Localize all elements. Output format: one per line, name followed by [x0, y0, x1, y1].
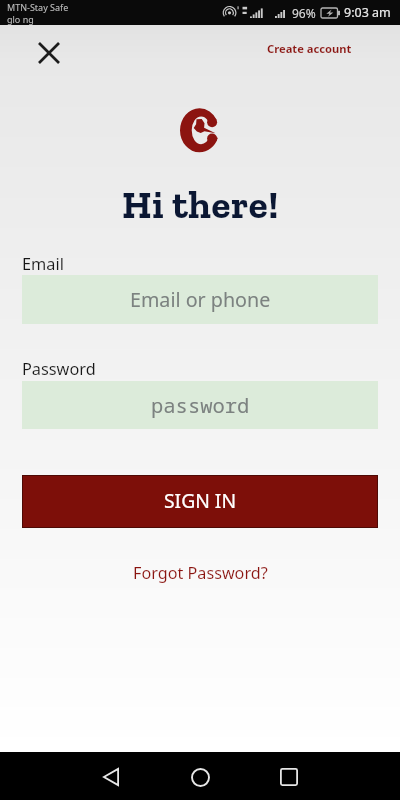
staticText: Email [22, 253, 64, 275]
staticText: 9:03 am [344, 4, 391, 21]
staticText: password [151, 391, 250, 419]
staticText: Email or phone [130, 286, 271, 313]
button[interactable]: Recents [265, 753, 313, 800]
button[interactable]: Home [176, 753, 224, 800]
button[interactable]: Create account [253, 29, 366, 68]
button[interactable]: Forgot Password? [133, 562, 268, 584]
staticText: Hi there! [122, 181, 279, 228]
button[interactable]: password [22, 381, 378, 429]
button[interactable]: SIGN IN [22, 475, 378, 528]
staticText: Create account [267, 41, 352, 56]
staticText: Password [22, 358, 96, 380]
staticText: 96% [292, 5, 316, 21]
staticText: glo ng [7, 13, 34, 25]
staticText: Forgot Password? [133, 562, 268, 584]
button[interactable]: Close [29, 33, 69, 73]
staticText: SIGN IN [164, 487, 237, 513]
button[interactable]: Email or phone [22, 275, 378, 324]
button[interactable]: Back [87, 753, 135, 800]
staticText: MTN-Stay Safe [7, 1, 69, 13]
